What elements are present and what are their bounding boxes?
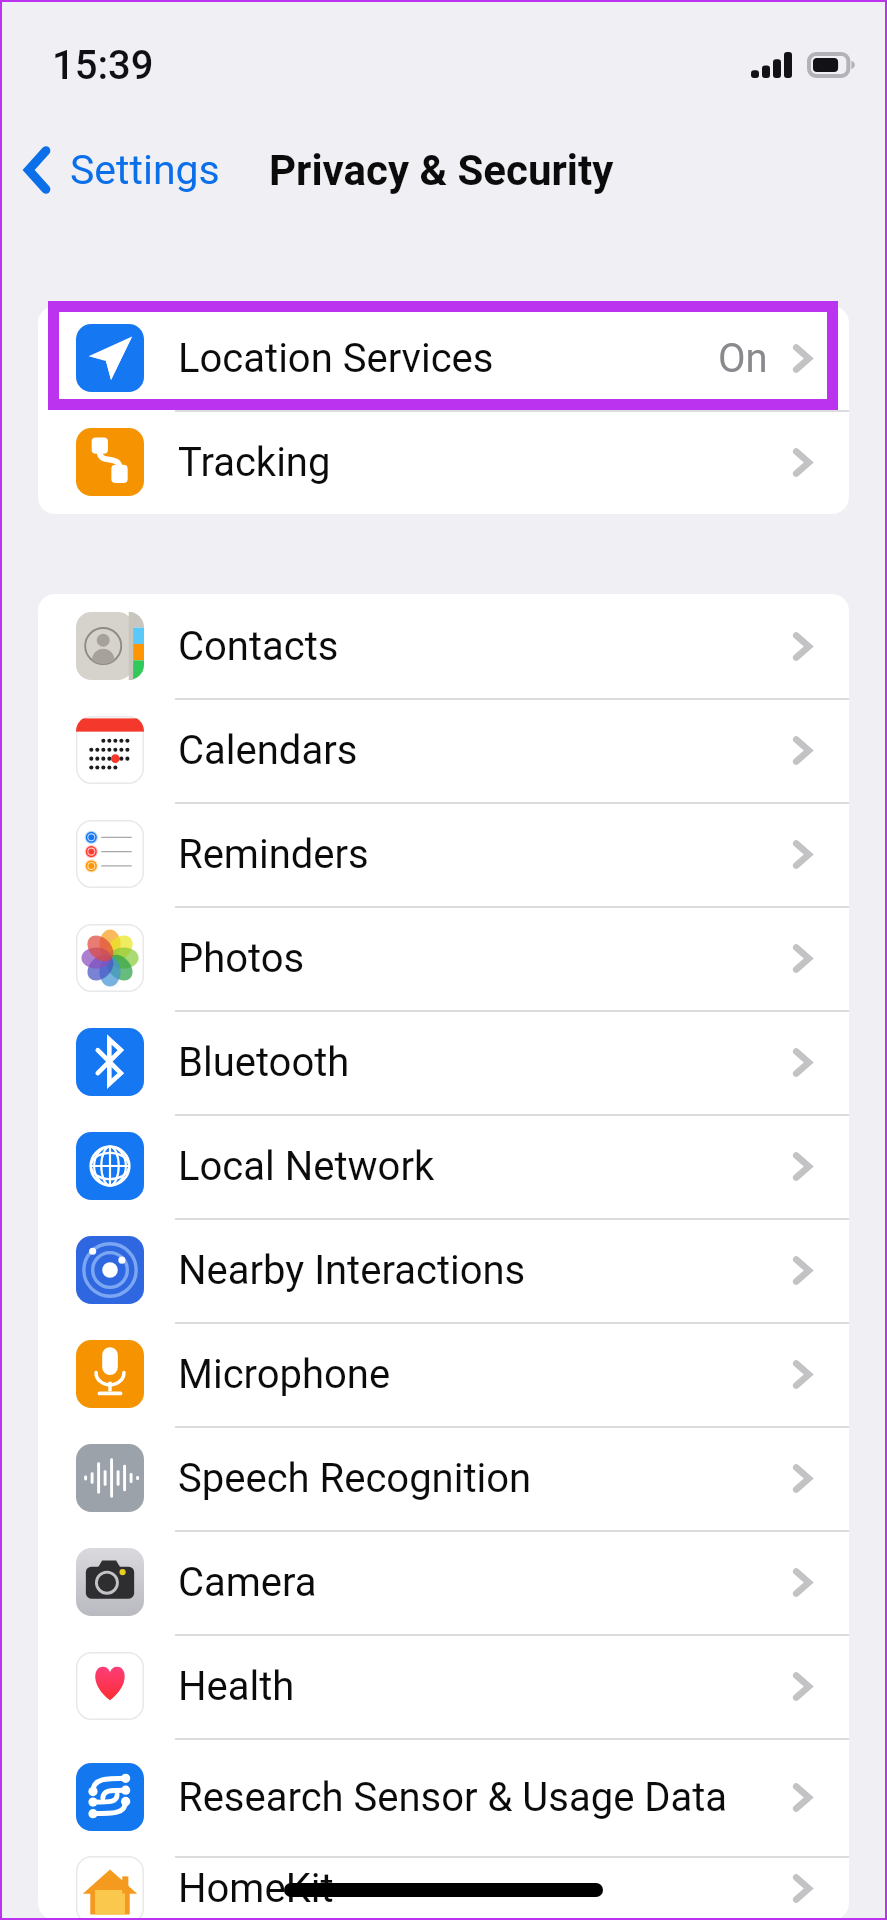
staticText: Reminders [178, 831, 369, 878]
button[interactable]: Contacts [38, 594, 849, 698]
button[interactable]: Local Network [38, 1114, 849, 1218]
button[interactable]: Health [38, 1634, 849, 1738]
button[interactable]: Camera [38, 1530, 849, 1634]
staticText: Microphone [178, 1351, 391, 1398]
staticText: Camera [178, 1559, 317, 1606]
staticText: Speech Recognition [178, 1455, 532, 1502]
staticText: Research Sensor & Usage Data [178, 1774, 728, 1821]
button[interactable]: Reminders [38, 802, 849, 906]
staticText: Calendars [178, 727, 358, 774]
staticText: Tracking [178, 439, 331, 486]
button[interactable]: Calendars [38, 698, 849, 802]
staticText: Privacy & Security [269, 146, 614, 195]
button[interactable]: HomeKit [38, 1856, 849, 1920]
button[interactable]: Bluetooth [38, 1010, 849, 1114]
button[interactable]: Speech Recognition [38, 1426, 849, 1530]
button[interactable]: Location Services [38, 306, 849, 410]
staticText: Bluetooth [178, 1039, 350, 1086]
staticText: On [718, 335, 768, 382]
button[interactable]: Nearby Interactions [38, 1218, 849, 1322]
staticText: Nearby Interactions [178, 1247, 526, 1294]
button[interactable]: Tracking [38, 410, 849, 514]
button[interactable]: Settings [17, 138, 228, 202]
staticText: Contacts [178, 623, 339, 670]
staticText: Health [178, 1663, 295, 1710]
button[interactable]: Research Sensor & Usage Data [38, 1738, 849, 1856]
staticText: 15:39 [52, 42, 154, 89]
staticText: Photos [178, 935, 305, 982]
staticText: Location Services [178, 335, 494, 382]
button[interactable]: Photos [38, 906, 849, 1010]
staticText: Settings [70, 146, 220, 194]
button[interactable]: Microphone [38, 1322, 849, 1426]
staticText: Local Network [178, 1143, 435, 1190]
staticText: HomeKit [178, 1865, 334, 1912]
